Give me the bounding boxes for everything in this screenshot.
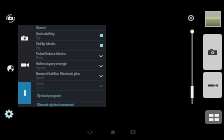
button[interactable]: Gallery [206,12,220,26]
button[interactable]: Settings [1,106,17,122]
staticText: Uložit [36,82,45,86]
staticText: Zvuk závěrky [36,32,55,36]
button[interactable]: Zoom [188,28,197,106]
button[interactable]: Flash [2,60,18,76]
button[interactable]: Výchozí program [31,91,106,101]
staticText: Služby blesku [36,42,56,46]
button[interactable]: Počasí/lokace blesku [31,51,106,60]
staticText: Spoušť [36,76,45,79]
staticText: Nastavit tlačítko Hlasitosti jako [36,72,80,76]
button[interactable]: Recent apps [126,125,140,139]
button[interactable]: Uložit [31,81,106,90]
staticText: Obnovit výchozí nastavení [37,103,75,107]
button[interactable]: Camera settings [18,25,31,51]
button[interactable]: Shooting mode [205,110,222,124]
button[interactable]: Take photo [203,34,222,70]
button[interactable]: Nastavit tlačítko Hlasitosti jako [31,71,106,80]
button[interactable]: Exposure [185,12,196,23]
staticText: Vypnuto [36,66,47,69]
staticText: Vyp. [36,46,42,49]
staticText: Vyp. [36,36,42,39]
staticText: Zařízení [36,86,46,89]
button[interactable]: Video settings [18,51,31,79]
staticText: Výchozí program [37,94,62,98]
button[interactable]: Record video [203,72,222,98]
staticText: Počasí/lokace blesku [36,52,66,56]
staticText: Mimo [36,56,43,59]
button[interactable]: Obnovit výchozí nastavení [31,102,106,107]
button[interactable]: Switch camera [2,10,18,26]
staticText: Obecné [36,26,46,30]
button[interactable]: General settings [18,79,31,107]
button[interactable]: Režim úspory energie [31,61,106,70]
button[interactable]: Home [106,125,120,139]
staticText: Režim úspory energie [36,62,68,66]
button[interactable]: Služby blesku [31,41,106,50]
button[interactable]: Back [83,125,97,139]
button[interactable]: Zvuk závěrky [31,31,106,40]
